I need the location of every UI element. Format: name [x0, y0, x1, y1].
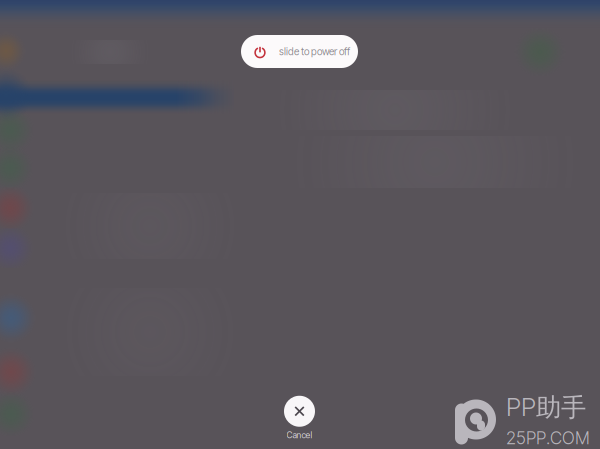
staticText: Cancel: [286, 430, 312, 440]
staticText: PP助手: [506, 391, 586, 424]
button[interactable]: Cancel: [264, 394, 334, 442]
staticText: slide to power off: [279, 45, 350, 58]
button[interactable]: slide to power off: [241, 35, 358, 68]
staticText: 25PP.COM: [506, 427, 590, 448]
